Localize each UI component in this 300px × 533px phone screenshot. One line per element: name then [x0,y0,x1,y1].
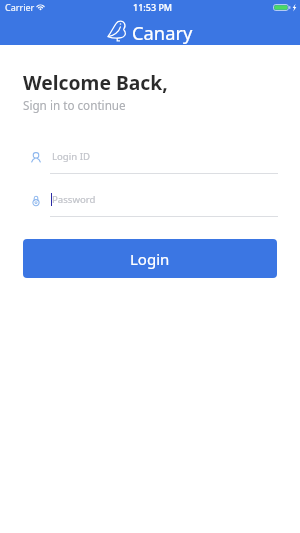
other: Canary logo [107,19,127,42]
other: Wi-Fi [36,3,45,10]
staticText: Password [52,193,96,206]
button[interactable]: User [23,146,277,177]
staticText: 11:53 PM [133,1,173,13]
staticText: Carrier [5,1,35,13]
staticText: Sign in to continue [23,97,126,113]
other: Password [32,195,40,206]
button[interactable]: Password [23,189,277,220]
other: User [31,152,41,163]
staticText: Canary [132,20,193,45]
button[interactable]: Login [23,239,277,278]
staticText: Login [130,249,170,269]
staticText: Login ID [52,150,90,163]
staticText: Welcome Back, [23,69,168,95]
other: Battery charging [273,4,297,11]
